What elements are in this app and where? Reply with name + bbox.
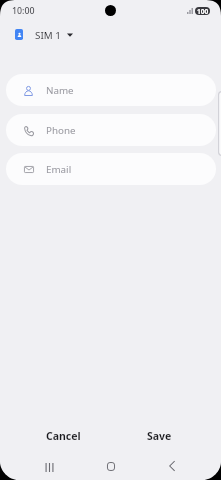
staticText: Save [147,429,172,443]
staticText: Name [46,84,74,97]
button[interactable]: Cancel [15,422,111,450]
button[interactable]: Home [93,453,129,479]
button[interactable]: Save [111,422,207,450]
staticText: SIM 1 [35,29,61,40]
button[interactable]: Phone [6,114,216,146]
staticText: Cancel [46,429,81,443]
staticText: Phone [46,124,76,137]
button[interactable]: Email [6,153,216,185]
staticText: 100 [197,7,209,15]
button[interactable]: Back [154,453,190,479]
button[interactable]: Name [6,74,216,106]
button[interactable]: SIM 1 [15,29,73,40]
staticText: 10:00 [12,5,35,17]
button[interactable]: Recents [31,454,67,480]
staticText: Email [46,163,72,176]
